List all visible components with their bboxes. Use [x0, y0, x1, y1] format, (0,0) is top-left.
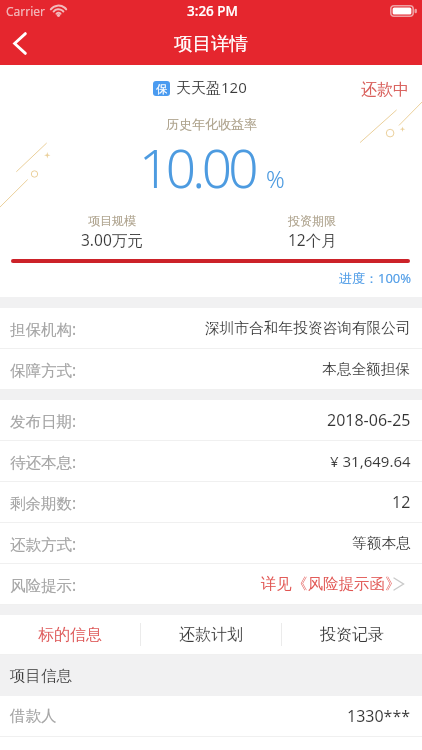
staticText: 投资期限 [288, 213, 336, 228]
button[interactable]: 风险提示: [0, 564, 422, 604]
button[interactable]: 保障方式: [0, 349, 422, 389]
staticText: 3:26 PM [187, 2, 238, 20]
button[interactable]: 担保机构: [0, 308, 422, 348]
staticText: 保障方式: [10, 359, 77, 380]
button[interactable]: Back [0, 22, 44, 65]
button[interactable]: 待还本息: [0, 441, 422, 481]
staticText: 标的信息 [38, 625, 102, 645]
staticText: 2018-06-25 [327, 409, 411, 431]
button[interactable]: 借款人 [0, 696, 422, 736]
staticText: 借款人 [10, 706, 57, 726]
staticText: 等额本息 [352, 534, 411, 553]
staticText: 还款中 [361, 80, 409, 100]
staticText: 待还本息: [10, 451, 77, 472]
staticText: 项目规模 [88, 213, 136, 228]
staticText: % [266, 163, 285, 194]
staticText: 10.00 [139, 131, 255, 203]
staticText: 3.00万元 [81, 229, 143, 250]
staticText: Carrier [6, 3, 46, 19]
staticText: 12 [392, 491, 411, 513]
staticText: 投资记录 [320, 625, 384, 645]
staticText: 发布日期: [10, 410, 77, 431]
staticText: 本息全额担保 [322, 360, 411, 379]
staticText: 还款方式: [10, 533, 77, 554]
staticText: 进度：100% [339, 269, 412, 287]
button[interactable]: 还款计划 [141, 615, 281, 654]
staticText: 项目信息 [10, 666, 72, 686]
staticText: 历史年化收益率 [166, 116, 257, 132]
staticText: 担保机构: [10, 318, 77, 339]
staticText: 还款计划 [179, 625, 243, 645]
staticText: 深圳市合和年投资咨询有限公司 [205, 319, 411, 338]
staticText: 保 [156, 82, 167, 96]
staticText: 12个月 [288, 229, 337, 250]
button[interactable]: 还款方式: [0, 523, 422, 563]
staticText: 剩余期数: [10, 492, 77, 513]
staticText: 1330*** [347, 705, 411, 727]
button[interactable]: 标的信息 [0, 615, 140, 654]
button[interactable]: 剩余期数: [0, 482, 422, 522]
staticText: 项目详情 [174, 32, 248, 55]
staticText: 天天盈120 [176, 77, 247, 97]
staticText: ¥ 31,649.64 [330, 451, 411, 471]
button[interactable]: 投资记录 [282, 615, 422, 654]
staticText: 风险提示: [10, 574, 77, 595]
button[interactable]: 发布日期: [0, 400, 422, 440]
staticText: 详见《风险提示函》 [261, 574, 401, 594]
